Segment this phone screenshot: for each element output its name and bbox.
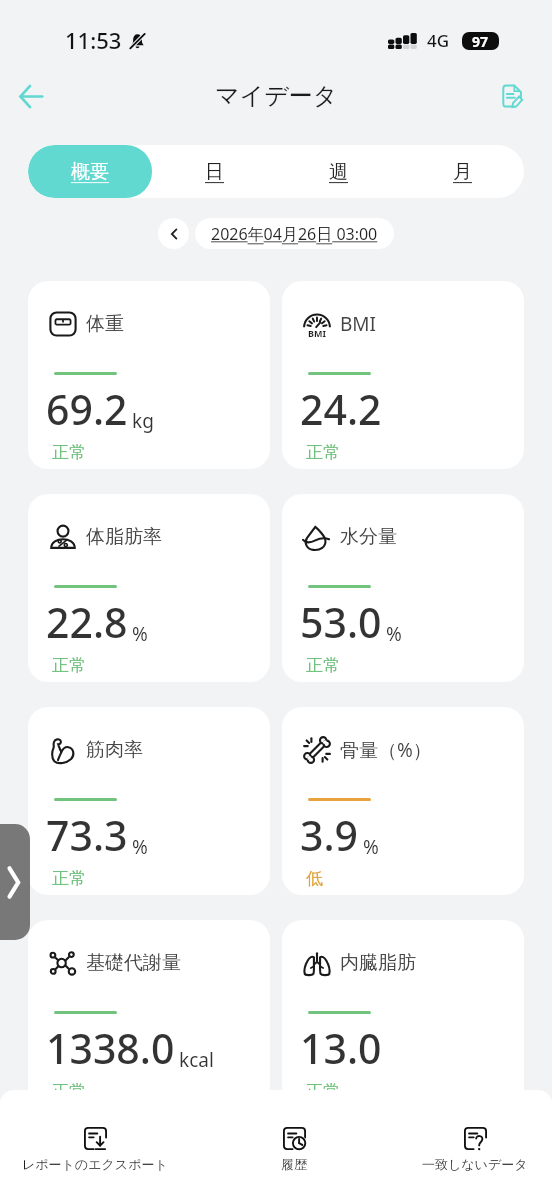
- staticText: 履歴: [281, 1156, 307, 1172]
- staticText: 97: [472, 32, 489, 50]
- staticText: 正常: [306, 655, 340, 676]
- staticText: 1338.0: [46, 1020, 175, 1076]
- staticText: 正常: [52, 1081, 86, 1102]
- button[interactable]: 一致しないデータ: [418, 1125, 532, 1174]
- staticText: マイデータ: [215, 81, 338, 111]
- staticText: 低: [306, 868, 323, 889]
- button[interactable]: 水分量: [282, 494, 524, 682]
- button[interactable]: レポートのエクスポート: [18, 1125, 172, 1174]
- staticText: 週: [329, 160, 348, 184]
- staticText: BMI: [308, 327, 326, 339]
- staticText: 概要: [71, 160, 109, 184]
- button[interactable]: 2026年04月26日 03:00: [195, 218, 394, 249]
- staticText: 体重: [86, 312, 124, 336]
- button[interactable]: 週: [276, 145, 400, 198]
- staticText: 24.2: [300, 381, 382, 437]
- staticText: 体脂肪率: [86, 525, 162, 549]
- staticText: %: [363, 834, 379, 860]
- staticText: 13.0: [300, 1020, 382, 1076]
- staticText: 73.3: [46, 807, 128, 863]
- staticText: 4G: [427, 29, 450, 52]
- button[interactable]: 骨量（%）: [282, 707, 524, 895]
- button[interactable]: 体脂肪率: [28, 494, 270, 682]
- staticText: %: [386, 621, 402, 647]
- button[interactable]: 概要: [28, 145, 152, 198]
- staticText: kcal: [179, 1047, 214, 1073]
- staticText: 53.0: [300, 594, 382, 650]
- button[interactable]: 内臓脂肪: [282, 920, 524, 1108]
- staticText: 水分量: [340, 525, 397, 549]
- button[interactable]: 月: [400, 145, 524, 198]
- staticText: レポートのエクスポート: [22, 1156, 168, 1172]
- button[interactable]: 筋肉率: [28, 707, 270, 895]
- button[interactable]: Previous: [158, 218, 189, 249]
- staticText: 日: [205, 160, 224, 184]
- button[interactable]: Open drawer: [0, 824, 30, 940]
- staticText: BMI: [340, 311, 377, 337]
- staticText: 正常: [52, 442, 86, 463]
- staticText: 正常: [52, 868, 86, 889]
- staticText: %: [132, 834, 148, 860]
- button[interactable]: 基礎代謝量: [28, 920, 270, 1108]
- button[interactable]: BMI: [282, 281, 524, 469]
- staticText: 正常: [306, 442, 340, 463]
- button[interactable]: 日: [152, 145, 276, 198]
- staticText: 69.2: [46, 381, 128, 437]
- staticText: 正常: [306, 1081, 340, 1102]
- staticText: 3.9: [300, 807, 359, 863]
- button[interactable]: Back: [8, 73, 54, 119]
- staticText: %: [132, 621, 148, 647]
- staticText: kg: [132, 408, 154, 434]
- staticText: 2026年04月26日 03:00: [211, 223, 378, 245]
- button[interactable]: Edit record: [491, 74, 535, 118]
- staticText: 骨量（%）: [340, 737, 432, 763]
- staticText: 月: [453, 160, 472, 184]
- staticText: 基礎代謝量: [86, 951, 181, 975]
- staticText: 11:53: [65, 25, 122, 55]
- staticText: 筋肉率: [86, 738, 143, 762]
- staticText: 内臓脂肪: [340, 951, 416, 975]
- staticText: 一致しないデータ: [422, 1156, 528, 1172]
- button[interactable]: 体重: [28, 281, 270, 469]
- staticText: 22.8: [46, 594, 128, 650]
- staticText: 正常: [52, 655, 86, 676]
- button[interactable]: 履歴: [277, 1125, 311, 1174]
